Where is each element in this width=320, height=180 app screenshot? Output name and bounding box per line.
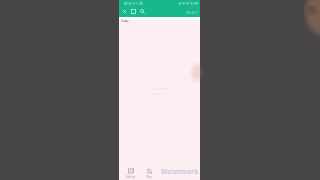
button[interactable]: Select all [131,9,136,14]
staticText: Gallery [126,175,136,179]
staticText: Files [146,175,152,179]
button[interactable]: SELECT [186,10,199,15]
button[interactable]: Close [122,9,127,14]
staticText: Watermark [161,167,199,176]
staticText: Today [121,19,129,23]
button[interactable]: Files [142,168,156,180]
button[interactable]: Gallery [124,168,138,180]
staticText: No photo [152,86,168,91]
button[interactable]: Search [140,9,145,14]
staticText: in here [152,91,164,96]
